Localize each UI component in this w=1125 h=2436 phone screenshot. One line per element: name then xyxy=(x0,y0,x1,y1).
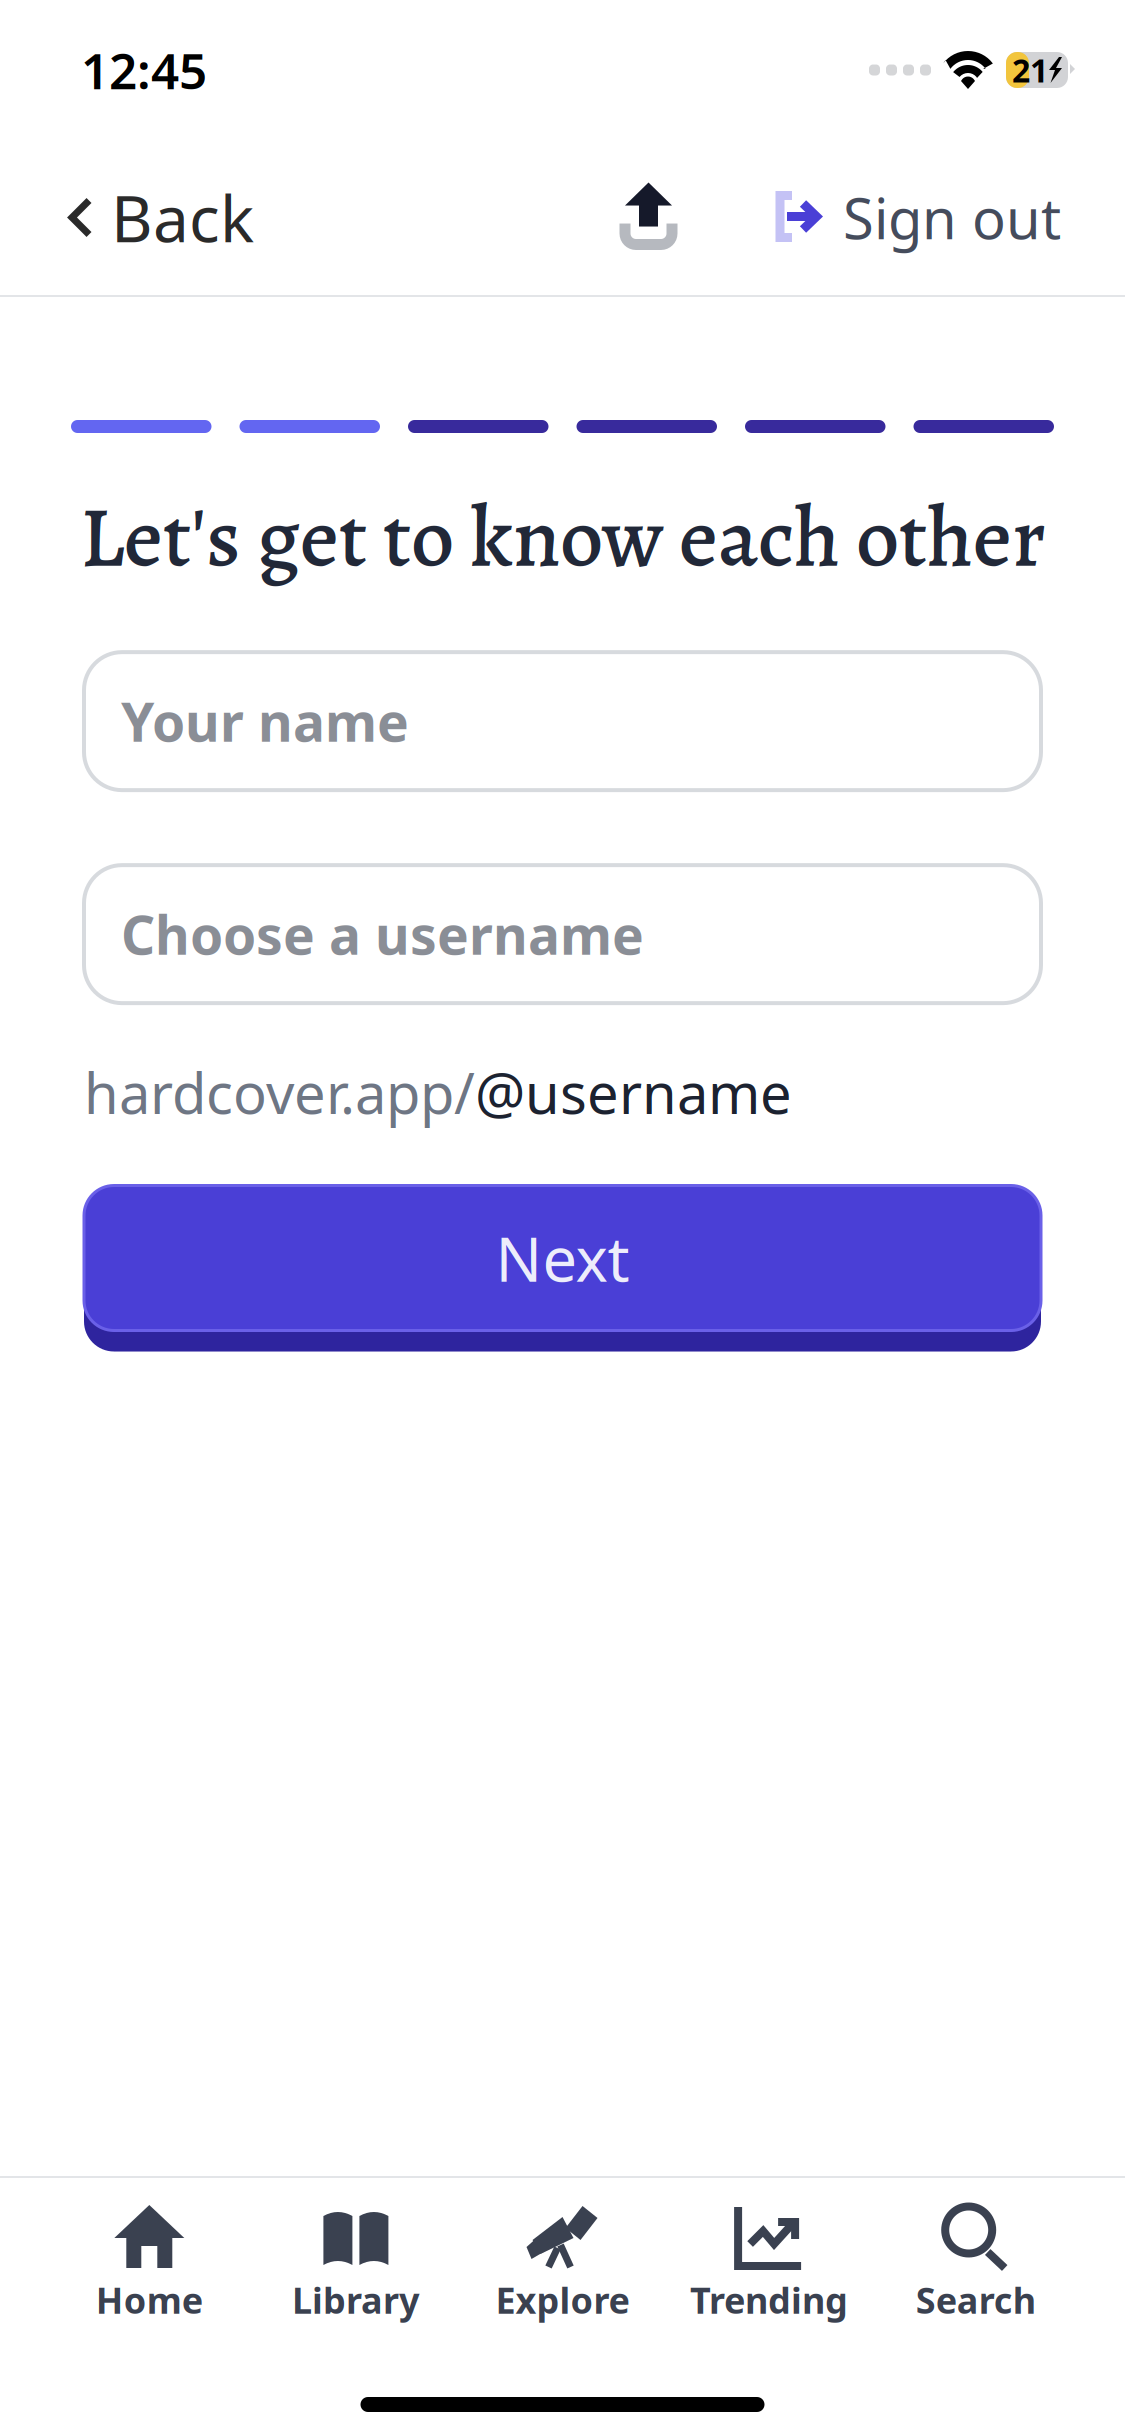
staticText: Explore xyxy=(495,2276,629,2324)
button[interactable]: Explore xyxy=(459,2200,666,2328)
staticText: hardcover.app/ xyxy=(84,1055,475,1129)
staticText: Trending xyxy=(690,2276,848,2324)
staticText: Your name xyxy=(121,686,409,756)
staticText: Back xyxy=(111,175,254,260)
button[interactable]: Sign out xyxy=(745,154,1125,281)
staticText: Search xyxy=(916,2276,1036,2324)
staticText: Choose a username xyxy=(121,899,644,969)
button[interactable]: Trending xyxy=(666,2200,872,2328)
button[interactable]: Next xyxy=(84,1185,1041,1351)
staticText: @username xyxy=(475,1055,792,1129)
staticText: Library xyxy=(292,2276,420,2324)
staticText: Home xyxy=(96,2276,203,2324)
staticText: 21 xyxy=(1012,49,1048,91)
button[interactable]: Back xyxy=(0,149,280,286)
button[interactable]: Search xyxy=(872,2200,1079,2328)
button[interactable]: Upload xyxy=(598,163,699,271)
staticText: Sign out xyxy=(843,180,1061,255)
button[interactable]: Library xyxy=(253,2200,459,2328)
button[interactable]: Home xyxy=(46,2200,253,2328)
staticText: Next xyxy=(495,1217,629,1299)
staticText: Let's get to know each other xyxy=(80,479,1046,595)
staticText: 12:45 xyxy=(81,37,207,103)
